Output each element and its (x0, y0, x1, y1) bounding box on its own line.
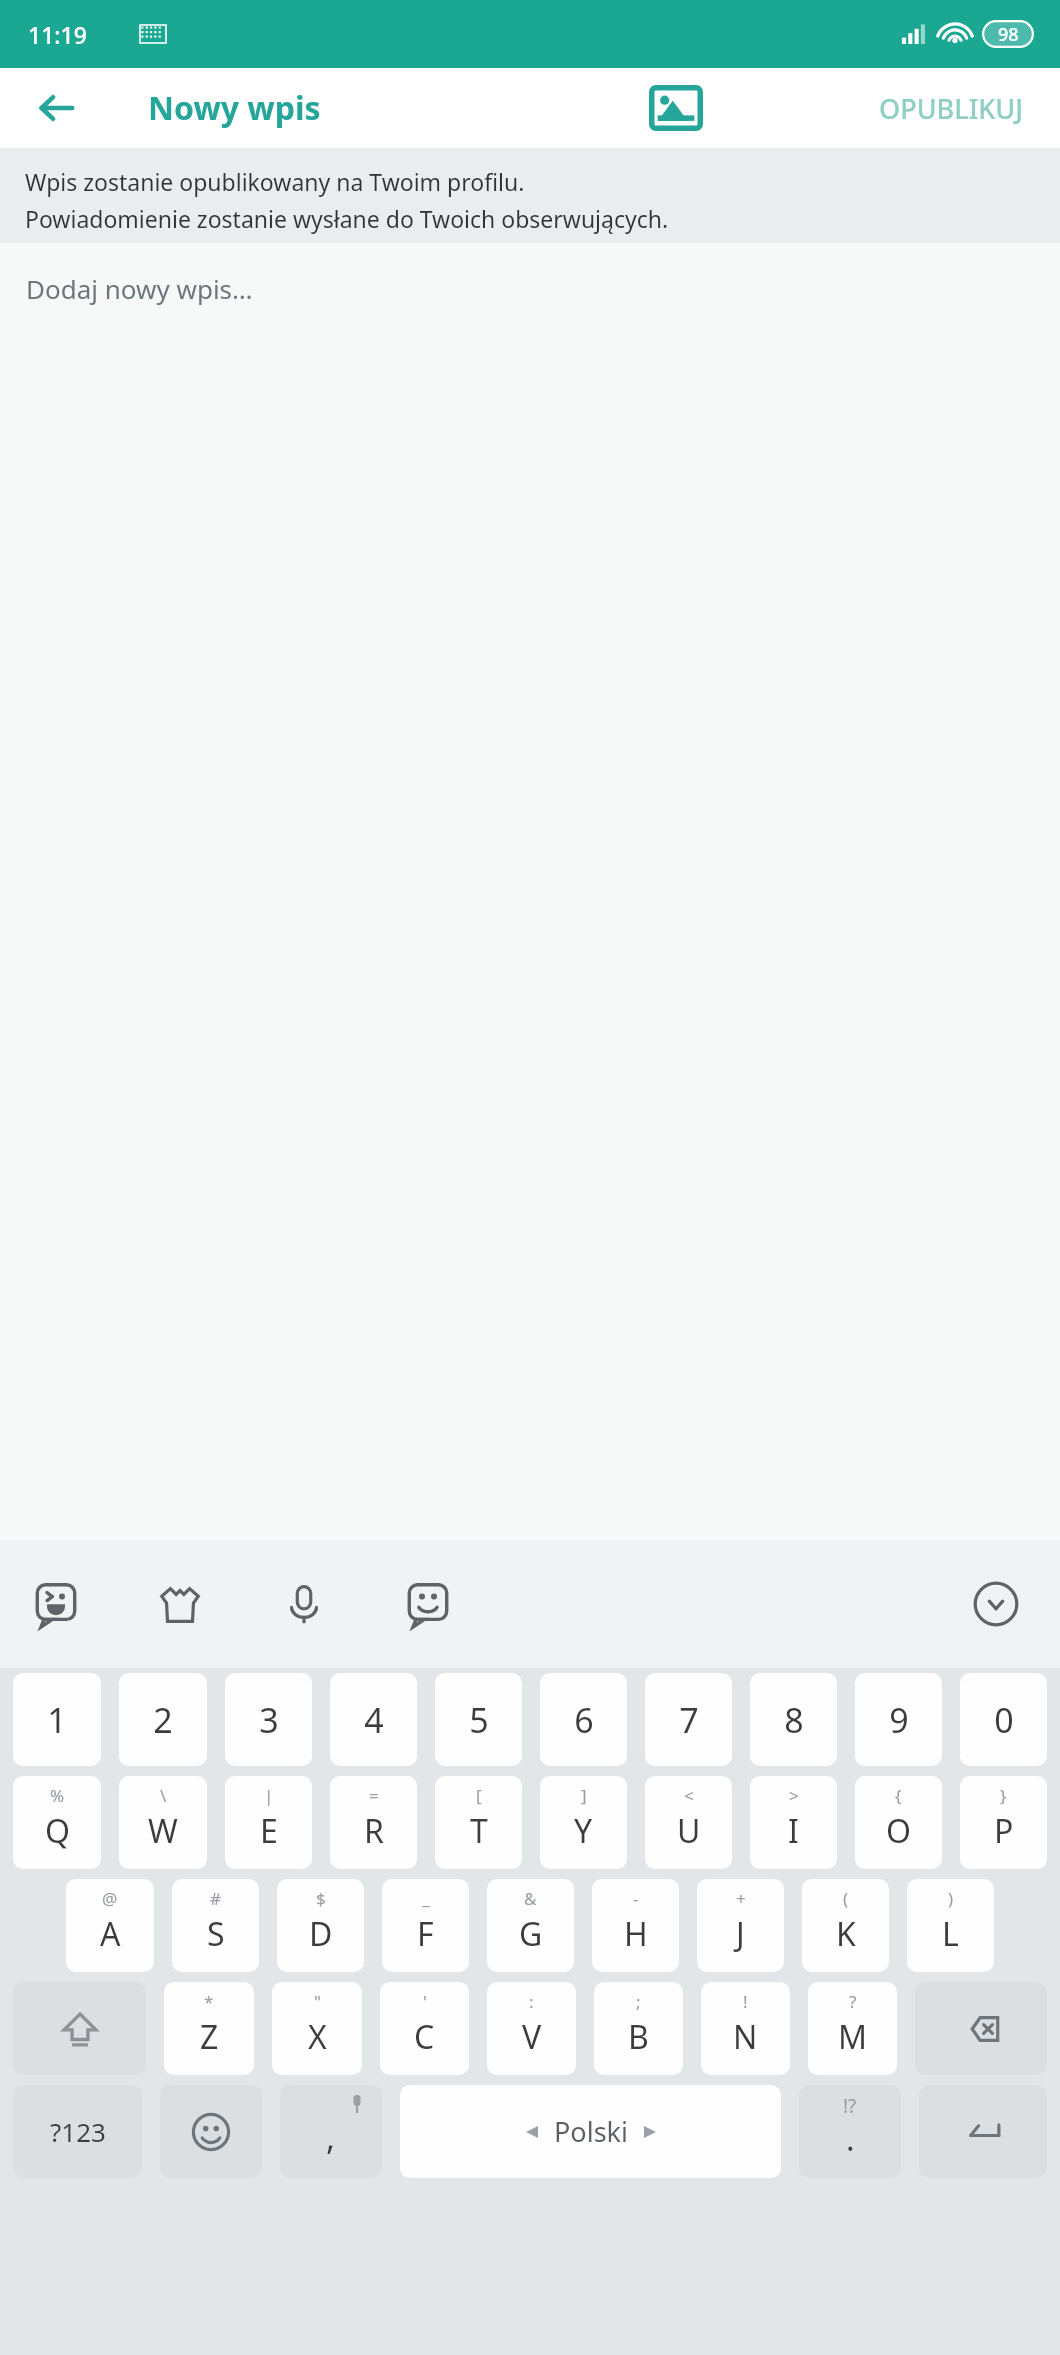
button[interactable]: 6 (540, 1673, 627, 1766)
staticText: ! (743, 1990, 748, 2013)
button[interactable]: & (487, 1879, 574, 1972)
button[interactable]: : (487, 1982, 576, 2075)
staticText: N (733, 2015, 758, 2059)
button[interactable]: ' (380, 1982, 469, 2075)
button[interactable]: 4 (330, 1673, 417, 1766)
staticText: ] (581, 1784, 587, 1807)
button[interactable]: Clothing (144, 1568, 216, 1640)
button[interactable]: 2 (119, 1673, 207, 1766)
staticText: L (942, 1912, 959, 1956)
button[interactable]: _ (382, 1879, 469, 1972)
staticText: _ (422, 1887, 430, 1910)
button[interactable]: ! (701, 1982, 790, 2075)
button[interactable]: < (645, 1776, 732, 1869)
button[interactable]: - (592, 1879, 679, 1972)
button[interactable]: ; (594, 1982, 683, 2075)
button[interactable]: ? (808, 1982, 897, 2075)
staticText: } (1000, 1784, 1007, 1807)
button[interactable]: [ (435, 1776, 522, 1869)
button[interactable]: Sticker (20, 1568, 92, 1640)
button[interactable]: + (697, 1879, 784, 1972)
button[interactable]: 7 (645, 1673, 732, 1766)
staticText: Polski (554, 2113, 628, 2150)
staticText: ; (636, 1990, 641, 2013)
button[interactable]: Back (28, 80, 84, 136)
button[interactable]: Voice input (268, 1568, 340, 1640)
staticText: 1 (47, 1697, 67, 1743)
staticText: # (210, 1887, 221, 1910)
staticText: I (788, 1809, 799, 1853)
staticText: ) (948, 1887, 954, 1910)
staticText: 11:19 (28, 19, 87, 50)
button[interactable]: % (13, 1776, 101, 1869)
button[interactable]: 9 (855, 1673, 942, 1766)
staticText: M (838, 2015, 868, 2059)
button[interactable]: = (330, 1776, 417, 1869)
staticText: < (684, 1784, 694, 1807)
staticText: 0 (994, 1697, 1014, 1743)
button[interactable]: Shift (13, 1982, 146, 2075)
staticText: V (522, 2015, 542, 2059)
staticText: P (994, 1809, 1014, 1853)
staticText: & (524, 1887, 537, 1910)
button[interactable]: \ (119, 1776, 207, 1869)
button[interactable]: Add image (640, 72, 712, 144)
staticText: [ (476, 1784, 482, 1807)
staticText: Z (200, 2015, 219, 2059)
button[interactable]: * (164, 1982, 254, 2075)
button[interactable]: ) (907, 1879, 994, 1972)
button[interactable]: Backspace (915, 1982, 1047, 2075)
button[interactable]: , (280, 2085, 382, 2178)
button[interactable]: 3 (225, 1673, 312, 1766)
button[interactable]: Emoji (160, 2085, 262, 2178)
staticText: !? (843, 2093, 857, 2119)
staticText: \ (160, 1784, 167, 1807)
button[interactable]: 5 (435, 1673, 522, 1766)
staticText: Nowy wpis (148, 86, 321, 130)
button[interactable]: OPUBLIKUJ (859, 76, 1044, 141)
staticText: @ (102, 1887, 118, 1910)
staticText: 98 (998, 22, 1019, 47)
staticText: 3 (259, 1697, 279, 1743)
staticText: D (309, 1912, 333, 1956)
staticText: ? (849, 1990, 857, 2013)
staticText: Dodaj nowy wpis… (26, 271, 253, 306)
staticText: ( (843, 1887, 849, 1910)
staticText: | (264, 1784, 274, 1807)
button[interactable]: $ (277, 1879, 364, 1972)
staticText: W (148, 1809, 178, 1853)
button[interactable]: 1 (13, 1673, 101, 1766)
button[interactable]: Polski (400, 2085, 781, 2178)
button[interactable]: { (855, 1776, 942, 1869)
button[interactable]: Hide keyboard (960, 1568, 1032, 1640)
staticText: A (100, 1912, 121, 1956)
staticText: J (736, 1912, 745, 1956)
staticText: X (308, 2015, 327, 2059)
button[interactable]: ?123 (13, 2085, 142, 2178)
button[interactable]: ] (540, 1776, 627, 1869)
staticText: * (204, 1990, 214, 2013)
staticText: { (895, 1784, 902, 1807)
staticText: O (886, 1809, 911, 1853)
button[interactable]: > (750, 1776, 837, 1869)
staticText: 9 (889, 1697, 909, 1743)
button[interactable]: !? (799, 2085, 901, 2178)
staticText: - (633, 1887, 639, 1910)
staticText: 2 (153, 1697, 173, 1743)
staticText: 5 (469, 1697, 489, 1743)
button[interactable]: 8 (750, 1673, 837, 1766)
button[interactable]: # (172, 1879, 259, 1972)
button[interactable]: Emoji sticker (392, 1568, 464, 1640)
staticText: G (519, 1912, 543, 1956)
button[interactable]: } (960, 1776, 1047, 1869)
button[interactable]: 0 (960, 1673, 1047, 1766)
staticText: U (677, 1809, 701, 1853)
staticText: + (736, 1887, 746, 1910)
button[interactable]: @ (66, 1879, 154, 1972)
staticText: Powiadomienie zostanie wysłane do Twoich… (25, 203, 669, 234)
staticText: S (207, 1912, 225, 1956)
button[interactable]: " (272, 1982, 362, 2075)
button[interactable]: Enter (919, 2085, 1047, 2178)
button[interactable]: | (225, 1776, 312, 1869)
button[interactable]: ( (802, 1879, 889, 1972)
